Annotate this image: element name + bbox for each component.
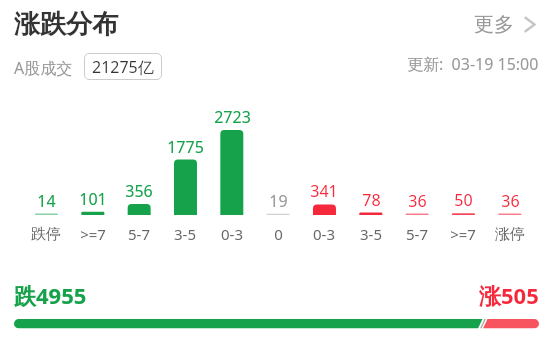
staticText: A股成交	[14, 57, 73, 79]
staticText: 1775	[167, 136, 204, 156]
staticText: 涨停	[495, 225, 525, 244]
staticText: 跌4955	[14, 280, 87, 310]
staticText: >=7	[450, 224, 476, 244]
staticText: >=7	[80, 224, 106, 244]
staticText: 36	[408, 190, 427, 210]
staticText: 跌停	[31, 225, 61, 244]
staticText: 356	[125, 180, 153, 200]
staticText: 0-3	[221, 224, 243, 244]
staticText: 14	[37, 190, 56, 210]
staticText: 0	[274, 224, 283, 244]
staticText: 2723	[214, 106, 251, 126]
staticText: 341	[310, 180, 338, 200]
staticText: 0-3	[313, 224, 335, 244]
staticText: 3-5	[360, 224, 382, 244]
staticText: 19	[269, 190, 288, 210]
staticText: 5-7	[128, 224, 150, 244]
button[interactable]: 21275亿	[84, 53, 162, 80]
staticText: 36	[501, 190, 520, 210]
staticText: 5-7	[406, 224, 428, 244]
button[interactable]	[14, 319, 539, 329]
staticText: 更多	[474, 12, 514, 37]
staticText: 101	[79, 188, 107, 208]
button[interactable]: 更多	[474, 12, 536, 37]
staticText: 50	[454, 189, 473, 209]
staticText: 78	[362, 189, 381, 209]
staticText: 21275亿	[92, 56, 154, 78]
staticText: 3-5	[174, 224, 196, 244]
staticText: 更新: 03-19 15:00	[407, 53, 539, 75]
staticText: 涨跌分布	[14, 8, 118, 41]
staticText: 涨505	[479, 280, 539, 310]
